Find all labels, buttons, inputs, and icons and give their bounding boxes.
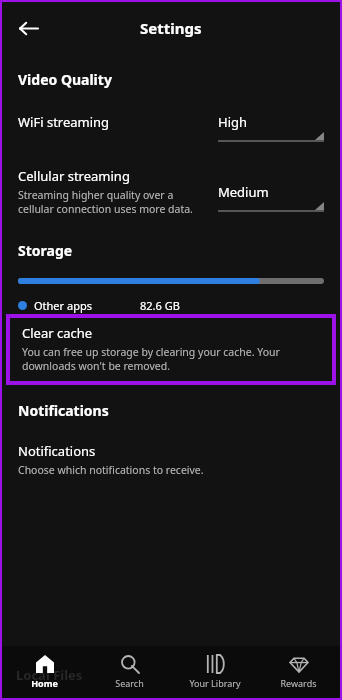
staticText: High bbox=[218, 113, 248, 131]
staticText: Other apps bbox=[34, 298, 92, 313]
other: Your Library bbox=[206, 655, 224, 673]
staticText: Notifications bbox=[18, 442, 96, 460]
other: Home bbox=[36, 655, 54, 673]
other: Rewards bbox=[290, 655, 308, 673]
staticText: Streaming higher quality over a cellular… bbox=[18, 188, 210, 216]
button[interactable]: Rewards bbox=[257, 646, 340, 698]
staticText: Clear cache bbox=[22, 324, 93, 342]
staticText: Your Library bbox=[189, 677, 241, 689]
staticText: Search bbox=[115, 677, 144, 689]
button[interactable]: Search bbox=[87, 646, 172, 698]
staticText: Medium bbox=[218, 183, 269, 201]
staticText: Rewards bbox=[280, 677, 317, 689]
button[interactable]: Medium bbox=[218, 183, 324, 219]
staticText: Home bbox=[31, 677, 58, 689]
staticText: Storage bbox=[18, 241, 73, 260]
button[interactable]: Back bbox=[10, 10, 46, 46]
staticText: 82.6 GB bbox=[140, 298, 180, 313]
other: Search bbox=[121, 655, 139, 673]
button[interactable]: High bbox=[218, 113, 324, 149]
button[interactable]: Clear cache bbox=[10, 318, 332, 381]
staticText: WiFi streaming bbox=[18, 113, 110, 131]
staticText: Settings bbox=[140, 18, 202, 38]
staticText: Cellular streaming bbox=[18, 167, 130, 185]
button[interactable]: Notifications bbox=[18, 442, 324, 477]
staticText: You can free up storage by clearing your… bbox=[22, 345, 324, 373]
button[interactable]: Your Library bbox=[172, 646, 257, 698]
staticText: Choose which notifications to receive. bbox=[18, 463, 204, 477]
staticText: Notifications bbox=[18, 401, 109, 420]
staticText: Video Quality bbox=[18, 70, 112, 89]
button[interactable]: Home bbox=[2, 646, 87, 698]
staticText: Local Files bbox=[16, 666, 83, 684]
